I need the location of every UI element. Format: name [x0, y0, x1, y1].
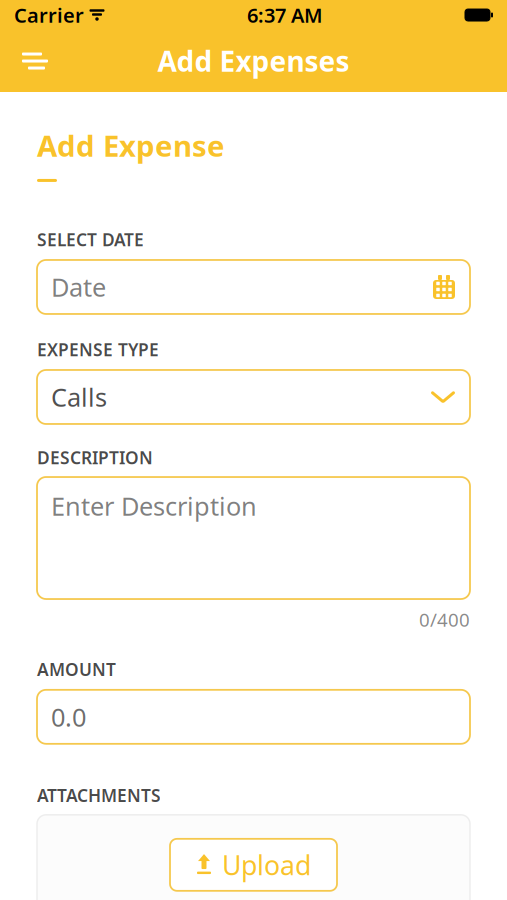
- staticText: Carrier: [14, 2, 84, 28]
- staticText: 0.0: [51, 700, 86, 734]
- staticText: EXPENSE TYPE: [37, 338, 159, 361]
- staticText: DESCRIPTION: [37, 446, 153, 469]
- staticText: Enter Description: [51, 489, 257, 523]
- button[interactable]: Menu: [0, 39, 66, 83]
- staticText: Calls: [51, 380, 107, 414]
- staticText: 6:37 AM: [247, 2, 323, 28]
- button[interactable]: Calls: [37, 370, 470, 424]
- button[interactable]: Date: [37, 260, 470, 314]
- staticText: SELECT DATE: [37, 228, 144, 251]
- staticText: Add Expenses: [157, 42, 349, 80]
- staticText: Upload: [222, 847, 311, 882]
- staticText: Date: [51, 270, 106, 304]
- button[interactable]: Upload: [170, 839, 337, 891]
- button[interactable]: Enter Description: [37, 477, 470, 599]
- staticText: Add Expense: [37, 126, 225, 165]
- staticText: ATTACHMENTS: [37, 784, 161, 807]
- staticText: AMOUNT: [37, 658, 116, 681]
- staticText: 0/400: [419, 607, 470, 632]
- button[interactable]: 0.0: [37, 690, 470, 744]
